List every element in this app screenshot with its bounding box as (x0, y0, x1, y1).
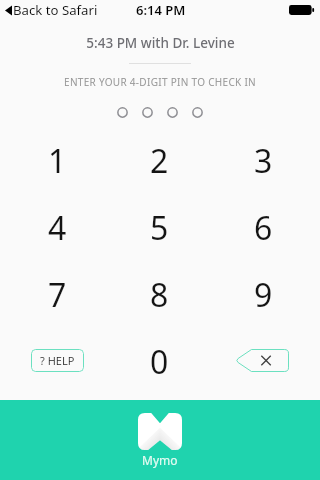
staticText: 6 (254, 206, 273, 250)
button[interactable]: 6 (213, 194, 320, 261)
staticText: 8 (150, 273, 169, 317)
staticText: 1 (48, 139, 67, 183)
button[interactable]: 8 (106, 261, 213, 328)
button[interactable]: 3 (213, 127, 320, 194)
button[interactable]: Back to Safari (5, 0, 98, 20)
button[interactable]: Delete (235, 349, 289, 372)
staticText: 7 (48, 273, 67, 317)
staticText: 5 (150, 206, 169, 250)
button[interactable]: 5 (106, 194, 213, 261)
staticText: 0 (150, 340, 169, 384)
staticText: ENTER YOUR 4-DIGIT PIN TO CHECK IN (64, 75, 256, 89)
button[interactable]: 4 (0, 194, 106, 261)
staticText: 6:14 PM (136, 1, 186, 19)
staticText: ? HELP (40, 353, 75, 368)
staticText: 4 (48, 206, 67, 250)
staticText: Back to Safari (13, 1, 98, 19)
staticText: 5:43 PM with Dr. Levine (86, 34, 235, 52)
staticText: 3 (254, 139, 273, 183)
button[interactable]: 1 (0, 127, 106, 194)
staticText: 9 (254, 273, 273, 317)
staticText: 2 (150, 139, 169, 183)
button[interactable]: 0 (106, 328, 213, 395)
button[interactable]: 7 (0, 261, 106, 328)
button[interactable]: 2 (106, 127, 213, 194)
button[interactable]: 9 (213, 261, 320, 328)
button[interactable]: ? HELP (31, 349, 84, 372)
staticText: Mymo (142, 452, 178, 468)
